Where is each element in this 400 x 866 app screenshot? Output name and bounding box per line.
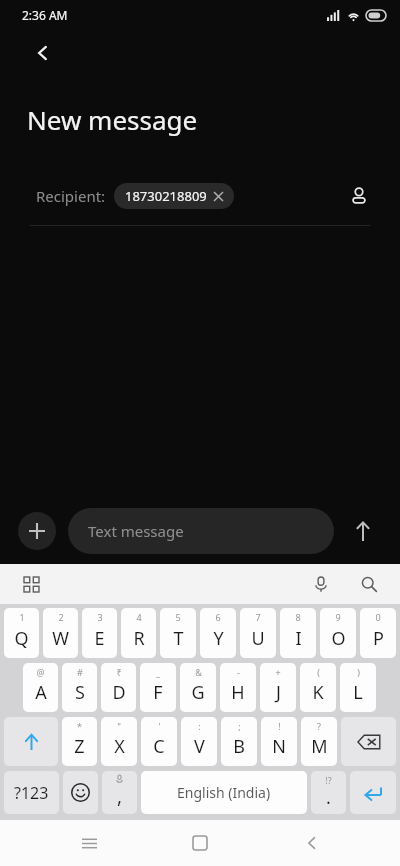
staticText: ;	[238, 720, 241, 732]
staticText: ?123	[14, 782, 49, 804]
staticText: ,	[117, 783, 123, 809]
button[interactable]: Search	[354, 569, 384, 599]
button[interactable]: -	[220, 663, 256, 712]
staticText: .	[326, 785, 331, 810]
button[interactable]: Add attachment	[18, 512, 56, 550]
staticText: 8	[295, 611, 301, 623]
button[interactable]: !	[261, 717, 297, 766]
staticText: Q	[14, 626, 29, 651]
button[interactable]: ?	[301, 717, 337, 766]
button[interactable]: 8	[280, 608, 316, 658]
button[interactable]: ,	[102, 771, 137, 814]
staticText: ?	[317, 720, 321, 732]
staticText: #	[77, 666, 83, 678]
button[interactable]: ;	[221, 717, 257, 766]
staticText: 9	[335, 611, 341, 623]
staticText: 3	[97, 611, 103, 623]
staticText: Recipient:	[36, 186, 106, 206]
staticText: D	[112, 680, 126, 705]
button[interactable]: Shift	[4, 717, 58, 766]
button[interactable]: Backspace	[341, 717, 396, 766]
staticText: _	[156, 666, 160, 678]
button[interactable]: Recents	[66, 820, 112, 866]
staticText: 2:36 AM	[22, 7, 68, 23]
button[interactable]: Back	[26, 36, 60, 70]
staticText: Text message	[88, 521, 184, 541]
button[interactable]: *	[62, 717, 97, 766]
button[interactable]: !?	[311, 771, 346, 814]
staticText: K	[312, 680, 324, 705]
button[interactable]: Emoji	[63, 771, 98, 814]
staticText: G	[191, 680, 205, 705]
button[interactable]: (	[300, 663, 336, 712]
button[interactable]: "	[101, 717, 137, 766]
staticText: E	[94, 626, 105, 651]
button[interactable]: :	[181, 717, 217, 766]
staticText: J	[276, 680, 281, 705]
staticText: U	[251, 626, 265, 651]
staticText: +	[275, 666, 281, 678]
staticText: ₹	[116, 666, 122, 678]
staticText: S	[75, 680, 85, 705]
button[interactable]: Voice input	[306, 569, 336, 599]
button[interactable]: 6	[200, 608, 236, 658]
button[interactable]: 9	[320, 608, 356, 658]
staticText: R	[133, 626, 145, 651]
button[interactable]: 18730218809	[114, 183, 234, 209]
staticText: "	[117, 720, 121, 732]
staticText: 7	[255, 611, 261, 623]
button[interactable]: )	[340, 663, 376, 712]
staticText: @	[36, 666, 45, 678]
staticText: :	[198, 720, 201, 732]
button[interactable]: Enter	[350, 771, 396, 814]
staticText: '	[158, 720, 161, 732]
button[interactable]: Contacts	[342, 179, 376, 213]
staticText: Y	[213, 626, 224, 651]
button[interactable]: Home	[177, 820, 223, 866]
button[interactable]: +	[260, 663, 296, 712]
button[interactable]: @	[23, 663, 58, 712]
button[interactable]: 1	[4, 608, 39, 658]
staticText: X	[114, 734, 125, 759]
button[interactable]: Back	[289, 820, 335, 866]
staticText: !?	[325, 774, 332, 786]
staticText: P	[373, 626, 384, 651]
button[interactable]: ₹	[101, 663, 136, 712]
button[interactable]: 5	[160, 608, 196, 658]
staticText: *	[77, 720, 82, 732]
staticText: )	[357, 666, 360, 678]
button[interactable]: Keyboard menu	[16, 569, 46, 599]
button[interactable]: 3	[82, 608, 117, 658]
staticText: M	[311, 734, 328, 759]
button[interactable]: English (India)	[141, 771, 307, 814]
staticText: I	[295, 626, 302, 651]
staticText: &	[195, 666, 202, 678]
button[interactable]: 4	[121, 608, 156, 658]
staticText: Z	[74, 734, 85, 759]
button[interactable]: Send	[344, 512, 382, 550]
button[interactable]: &	[180, 663, 216, 712]
staticText: V	[194, 734, 205, 759]
staticText: O	[331, 626, 346, 651]
button[interactable]: 2	[43, 608, 78, 658]
staticText: A	[35, 680, 47, 705]
staticText: 1	[19, 611, 25, 623]
button[interactable]: Text message	[68, 508, 334, 554]
staticText: 2	[58, 611, 64, 623]
button[interactable]: ?123	[4, 771, 59, 814]
button[interactable]: _	[140, 663, 176, 712]
staticText: 0	[375, 611, 381, 623]
staticText: 4	[136, 611, 142, 623]
staticText: English (India)	[177, 783, 271, 802]
staticText: T	[173, 626, 184, 651]
staticText: (	[317, 666, 320, 678]
staticText: L	[353, 680, 363, 705]
button[interactable]: 7	[240, 608, 276, 658]
staticText: !	[278, 720, 281, 732]
button[interactable]: 0	[360, 608, 396, 658]
button[interactable]: '	[141, 717, 177, 766]
button[interactable]: #	[62, 663, 97, 712]
staticText: H	[231, 680, 245, 705]
staticText: W	[52, 626, 69, 651]
staticText: -	[237, 666, 240, 678]
